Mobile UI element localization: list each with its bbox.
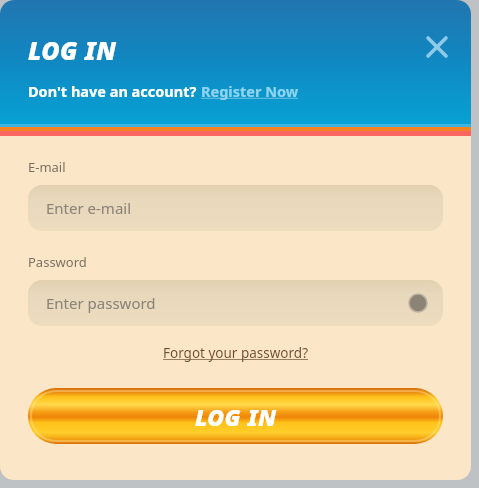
staticText: LOG IN (28, 33, 117, 67)
staticText: LOG IN (195, 401, 277, 432)
button[interactable]: Show password (405, 290, 431, 316)
button[interactable]: Enter password (28, 280, 443, 326)
button[interactable]: LOG IN (28, 388, 443, 444)
staticText: Register Now (201, 81, 299, 101)
staticText: Forgot your password? (163, 344, 309, 362)
staticText: Password (28, 253, 87, 271)
button[interactable]: Close (417, 27, 457, 67)
staticText: Enter password (46, 293, 156, 313)
staticText: Enter e-mail (46, 198, 132, 218)
button[interactable]: Forgot your password? (163, 344, 309, 362)
button[interactable]: Register Now (201, 81, 299, 101)
button[interactable]: Enter e-mail (28, 185, 443, 231)
staticText: E-mail (28, 158, 66, 176)
staticText: Don't have an account? (28, 81, 201, 101)
